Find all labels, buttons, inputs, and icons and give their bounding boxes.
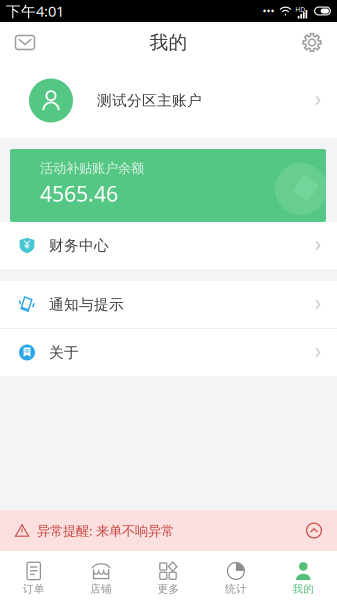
staticText: 订单 [23,582,45,595]
button[interactable]: 测试分区主账户 [0,63,337,138]
staticText: ••• [262,4,274,18]
staticText: 测试分区主账户 [97,91,202,109]
staticText: 活动补贴账户余额 [40,160,144,176]
button[interactable]: 我的 [270,551,337,600]
staticText: 更多 [157,582,179,595]
staticText: 4565.46 [40,179,118,208]
button[interactable]: 通知与提示 [0,281,337,328]
staticText: 我的 [149,31,187,54]
staticText: HD [295,5,305,14]
staticText: 关于 [49,343,79,361]
button[interactable]: 统计 [202,551,270,600]
staticText: 我的 [292,582,314,595]
staticText: 异常提醒: 来单不响异常 [37,522,174,539]
button[interactable]: 店铺 [67,551,135,600]
button[interactable]: 更多 [135,551,202,600]
staticText: 店铺 [90,582,112,595]
button[interactable]: 关于 [0,329,337,376]
staticText: 财务中心 [49,236,109,254]
button[interactable]: Settings [291,22,333,63]
button[interactable]: 财务中心 [0,222,337,269]
staticText: 通知与提示 [49,295,124,313]
button[interactable]: 订单 [0,551,67,600]
staticText: 下午4:01 [6,1,64,21]
staticText: 统计 [225,582,247,595]
button[interactable]: Messages [4,22,46,63]
button[interactable]: Collapse alert [297,510,331,551]
